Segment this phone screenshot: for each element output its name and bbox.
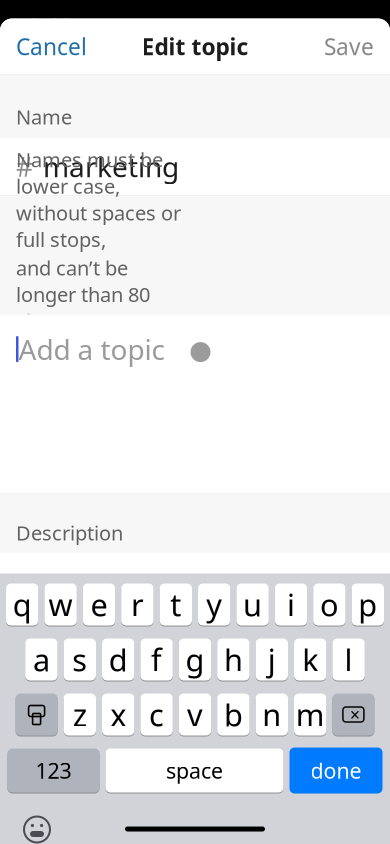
staticText: d <box>109 639 128 680</box>
staticText: marketing <box>43 148 179 185</box>
staticText: i <box>287 584 295 625</box>
staticText: and can’t be longer than 80 characters. <box>16 254 150 334</box>
button[interactable]: Delete <box>332 692 374 736</box>
button[interactable]: s <box>64 637 96 681</box>
button[interactable]: e <box>83 582 115 626</box>
staticText: c <box>149 694 164 735</box>
staticText: r <box>131 584 144 625</box>
button[interactable]: l <box>332 637 365 681</box>
staticText: l <box>345 639 353 680</box>
button[interactable]: u <box>236 582 269 626</box>
button[interactable]: t <box>160 582 192 626</box>
staticText: # <box>16 149 33 184</box>
button[interactable]: i <box>275 582 307 626</box>
button[interactable]: d <box>102 637 134 681</box>
button[interactable]: m <box>294 692 326 736</box>
button[interactable]: o <box>313 582 346 626</box>
staticText: Description <box>16 519 123 546</box>
button[interactable]: n <box>256 692 288 736</box>
staticText: o <box>320 584 339 625</box>
staticText: 9:41 <box>27 12 72 42</box>
staticText: e <box>90 584 107 625</box>
staticText: w <box>49 584 73 625</box>
button[interactable]: Emoji keyboard <box>14 809 60 844</box>
button[interactable]: Save <box>308 19 390 73</box>
staticText: Edit topic <box>141 31 248 61</box>
staticText: Names must be lower case, without spaces… <box>16 146 181 252</box>
staticText: k <box>302 639 318 680</box>
staticText: a <box>33 639 50 680</box>
button[interactable]: r <box>121 582 154 626</box>
staticText: done <box>310 756 361 785</box>
staticText: s <box>72 639 87 680</box>
staticText: Save <box>324 31 374 61</box>
staticText: Current topic <box>16 342 138 369</box>
button[interactable]: z <box>64 692 96 736</box>
button[interactable]: c <box>140 692 173 736</box>
button[interactable]: Add a topic <box>0 314 390 493</box>
staticText: Name <box>16 103 72 130</box>
staticText: z <box>73 694 87 735</box>
staticText: Cancel <box>16 31 87 61</box>
staticText: q <box>13 584 32 625</box>
staticText: × <box>350 703 360 726</box>
staticText: u <box>243 584 262 625</box>
staticText: f <box>151 639 162 680</box>
staticText: x <box>110 694 126 735</box>
button[interactable]: a <box>25 637 58 681</box>
button[interactable]: Cancel <box>0 19 103 73</box>
button[interactable]: done <box>289 747 382 793</box>
staticText: space <box>166 756 223 785</box>
staticText: g <box>185 639 204 680</box>
button[interactable]: h <box>217 637 250 681</box>
button[interactable]: j <box>256 637 288 681</box>
staticText: t <box>170 584 181 625</box>
button[interactable]: v <box>179 692 211 736</box>
button[interactable]: q <box>6 582 38 626</box>
staticText: 123 <box>35 756 71 785</box>
staticText: b <box>224 694 243 735</box>
button[interactable]: k <box>294 637 326 681</box>
button[interactable]: 123 <box>7 747 99 793</box>
staticText: j <box>268 639 276 680</box>
button[interactable]: x <box>102 692 134 736</box>
staticText: v <box>187 694 203 735</box>
staticText: Add a topic <box>18 330 164 368</box>
button[interactable]: # <box>0 137 390 195</box>
button[interactable]: g <box>179 637 211 681</box>
button[interactable]: y <box>198 582 230 626</box>
button[interactable]: w <box>44 582 77 626</box>
staticText: m <box>296 694 325 735</box>
button[interactable]: p <box>352 582 384 626</box>
staticText: n <box>262 694 281 735</box>
button[interactable]: space <box>105 747 283 793</box>
button[interactable]: f <box>140 637 173 681</box>
button[interactable]: b <box>217 692 250 736</box>
staticText: h <box>224 639 243 680</box>
button[interactable]: Shift <box>16 692 58 736</box>
staticText: p <box>358 584 377 625</box>
staticText: y <box>206 584 222 625</box>
